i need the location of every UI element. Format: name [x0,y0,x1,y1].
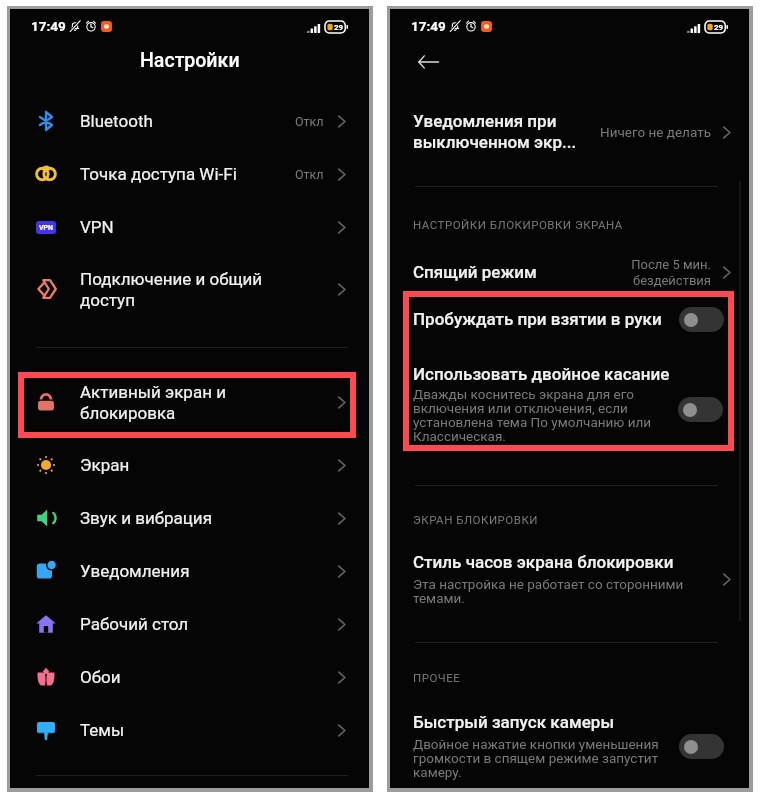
staticText: Спящий режим [413,262,631,282]
button[interactable]: Темы [10,704,369,756]
button[interactable]: Рабочий стол [10,598,369,650]
staticText: НАСТРОЙКИ БЛОКИРОВКИ ЭКРАНА [413,218,623,231]
staticText: Пробуждать при взятии в руки [413,309,679,329]
button[interactable]: Уведомления при выключенном экр... [390,105,749,159]
staticText: Bluetooth [80,111,295,131]
button[interactable]: Переключатель [679,734,724,759]
button[interactable]: Использовать двойное касание [390,362,749,462]
button[interactable]: Пробуждать при взятии в руки [390,298,749,340]
button[interactable]: Уведомления [10,545,369,597]
button[interactable]: Быстрый запуск камеры [390,712,749,781]
button[interactable]: Назад [410,45,446,79]
staticText: Уведомления [80,561,333,581]
staticText: 17:49 [31,18,66,34]
staticText: Настройки [140,49,240,72]
staticText: Ничего не делать [600,124,711,140]
staticText: Темы [80,720,333,740]
button[interactable]: Переключатель [679,307,724,332]
button[interactable]: Активный экран и блокировка [10,376,369,428]
button[interactable]: VPN [10,201,369,253]
staticText: Двойное нажатие кнопки уменьшения громко… [413,736,659,781]
staticText: 29 [334,23,344,32]
staticText: Откл [295,114,324,129]
staticText: Подключение и общий доступ [80,269,333,310]
button[interactable]: Звук и вибрация [10,492,369,544]
staticText: Быстрый запуск камеры [413,712,615,732]
staticText: Рабочий стол [80,614,333,634]
staticText: Стиль часов экрана блокировки [413,552,674,572]
staticText: Обои [80,667,333,687]
button[interactable]: Точка доступа Wi-Fi [10,148,369,200]
staticText: ПРОЧЕЕ [413,671,461,684]
staticText: Звук и вибрация [80,508,333,528]
button[interactable]: Спящий режим [390,252,749,292]
button[interactable]: Переключатель [678,397,723,422]
button[interactable]: Экран [10,439,369,491]
staticText: Точка доступа Wi-Fi [80,164,295,184]
button[interactable]: Обои [10,651,369,703]
staticText: Активный экран и блокировка [80,382,333,423]
staticText: Дважды коснитесь экрана для его включени… [413,386,652,445]
staticText: Использовать двойное касание [413,364,670,384]
staticText: Откл [295,167,324,182]
staticText: VPN [39,224,54,232]
staticText: Эта настройка не работает со сторонними … [413,576,684,607]
staticText: VPN [80,217,333,237]
button[interactable]: Стиль часов экрана блокировки [390,552,749,607]
staticText: 17:49 [411,18,446,34]
staticText: Уведомления при выключенном экр... [413,111,600,153]
staticText: 29 [714,23,724,32]
button[interactable]: Подключение и общий доступ [10,263,369,315]
staticText: Экран [80,455,333,475]
button[interactable]: Bluetooth [10,95,369,147]
staticText: После 5 мин. бездействия [631,257,711,288]
staticText: ЭКРАН БЛОКИРОВКИ [413,513,539,526]
